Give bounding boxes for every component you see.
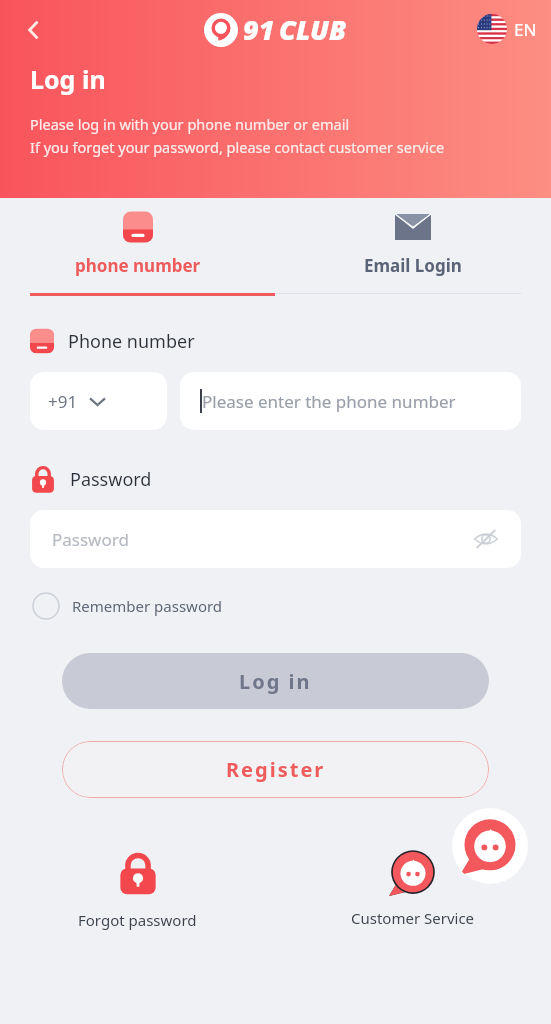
button[interactable]: Forgot password: [72, 844, 203, 936]
staticText: EN: [514, 18, 537, 41]
staticText: Password: [52, 528, 129, 551]
button[interactable]: phone number: [0, 208, 275, 277]
button[interactable]: Register: [62, 741, 489, 798]
button[interactable]: Please enter the phone number: [180, 372, 521, 430]
staticText: Forgot password: [78, 910, 197, 930]
staticText: Password: [70, 467, 152, 492]
staticText: Log in: [239, 668, 312, 695]
staticText: Register: [226, 756, 326, 783]
staticText: Remember password: [72, 596, 223, 616]
button[interactable]: EN: [473, 12, 541, 46]
button[interactable]: +91: [30, 372, 167, 430]
staticText: Phone number: [68, 329, 195, 354]
staticText: Email Login: [364, 254, 462, 277]
button[interactable]: Customer service chat: [452, 808, 528, 884]
button[interactable]: Remember password: [28, 588, 227, 624]
staticText: phone number: [75, 254, 201, 277]
staticText: Please log in with your phone number or …: [30, 114, 350, 134]
staticText: +91: [48, 390, 78, 413]
staticText: Please enter the phone number: [202, 390, 456, 413]
staticText: Log in: [30, 62, 106, 96]
button[interactable]: Customer Service: [345, 844, 481, 934]
staticText: If you forget your password, please cont…: [30, 137, 445, 157]
button[interactable]: Log in: [62, 653, 489, 709]
staticText: Customer Service: [351, 908, 475, 928]
button[interactable]: Email Login: [275, 208, 551, 277]
staticText: 91: [243, 11, 275, 48]
button[interactable]: Back: [12, 8, 56, 52]
button[interactable]: Password: [30, 510, 521, 568]
button[interactable]: Show password: [471, 524, 501, 554]
staticText: CLUB: [279, 11, 347, 48]
